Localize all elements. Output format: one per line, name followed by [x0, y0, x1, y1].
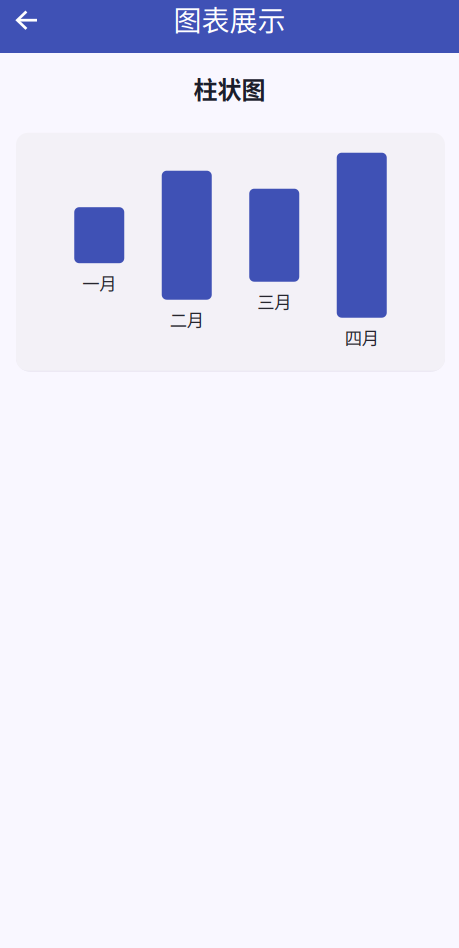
- staticText: 三月: [257, 289, 291, 314]
- staticText: 图表展示: [173, 0, 285, 39]
- staticText: 一月: [82, 270, 116, 295]
- staticText: 二月: [170, 307, 204, 332]
- button[interactable]: Back: [8, 0, 46, 41]
- staticText: 四月: [345, 325, 379, 350]
- staticText: 柱状图: [193, 71, 265, 106]
